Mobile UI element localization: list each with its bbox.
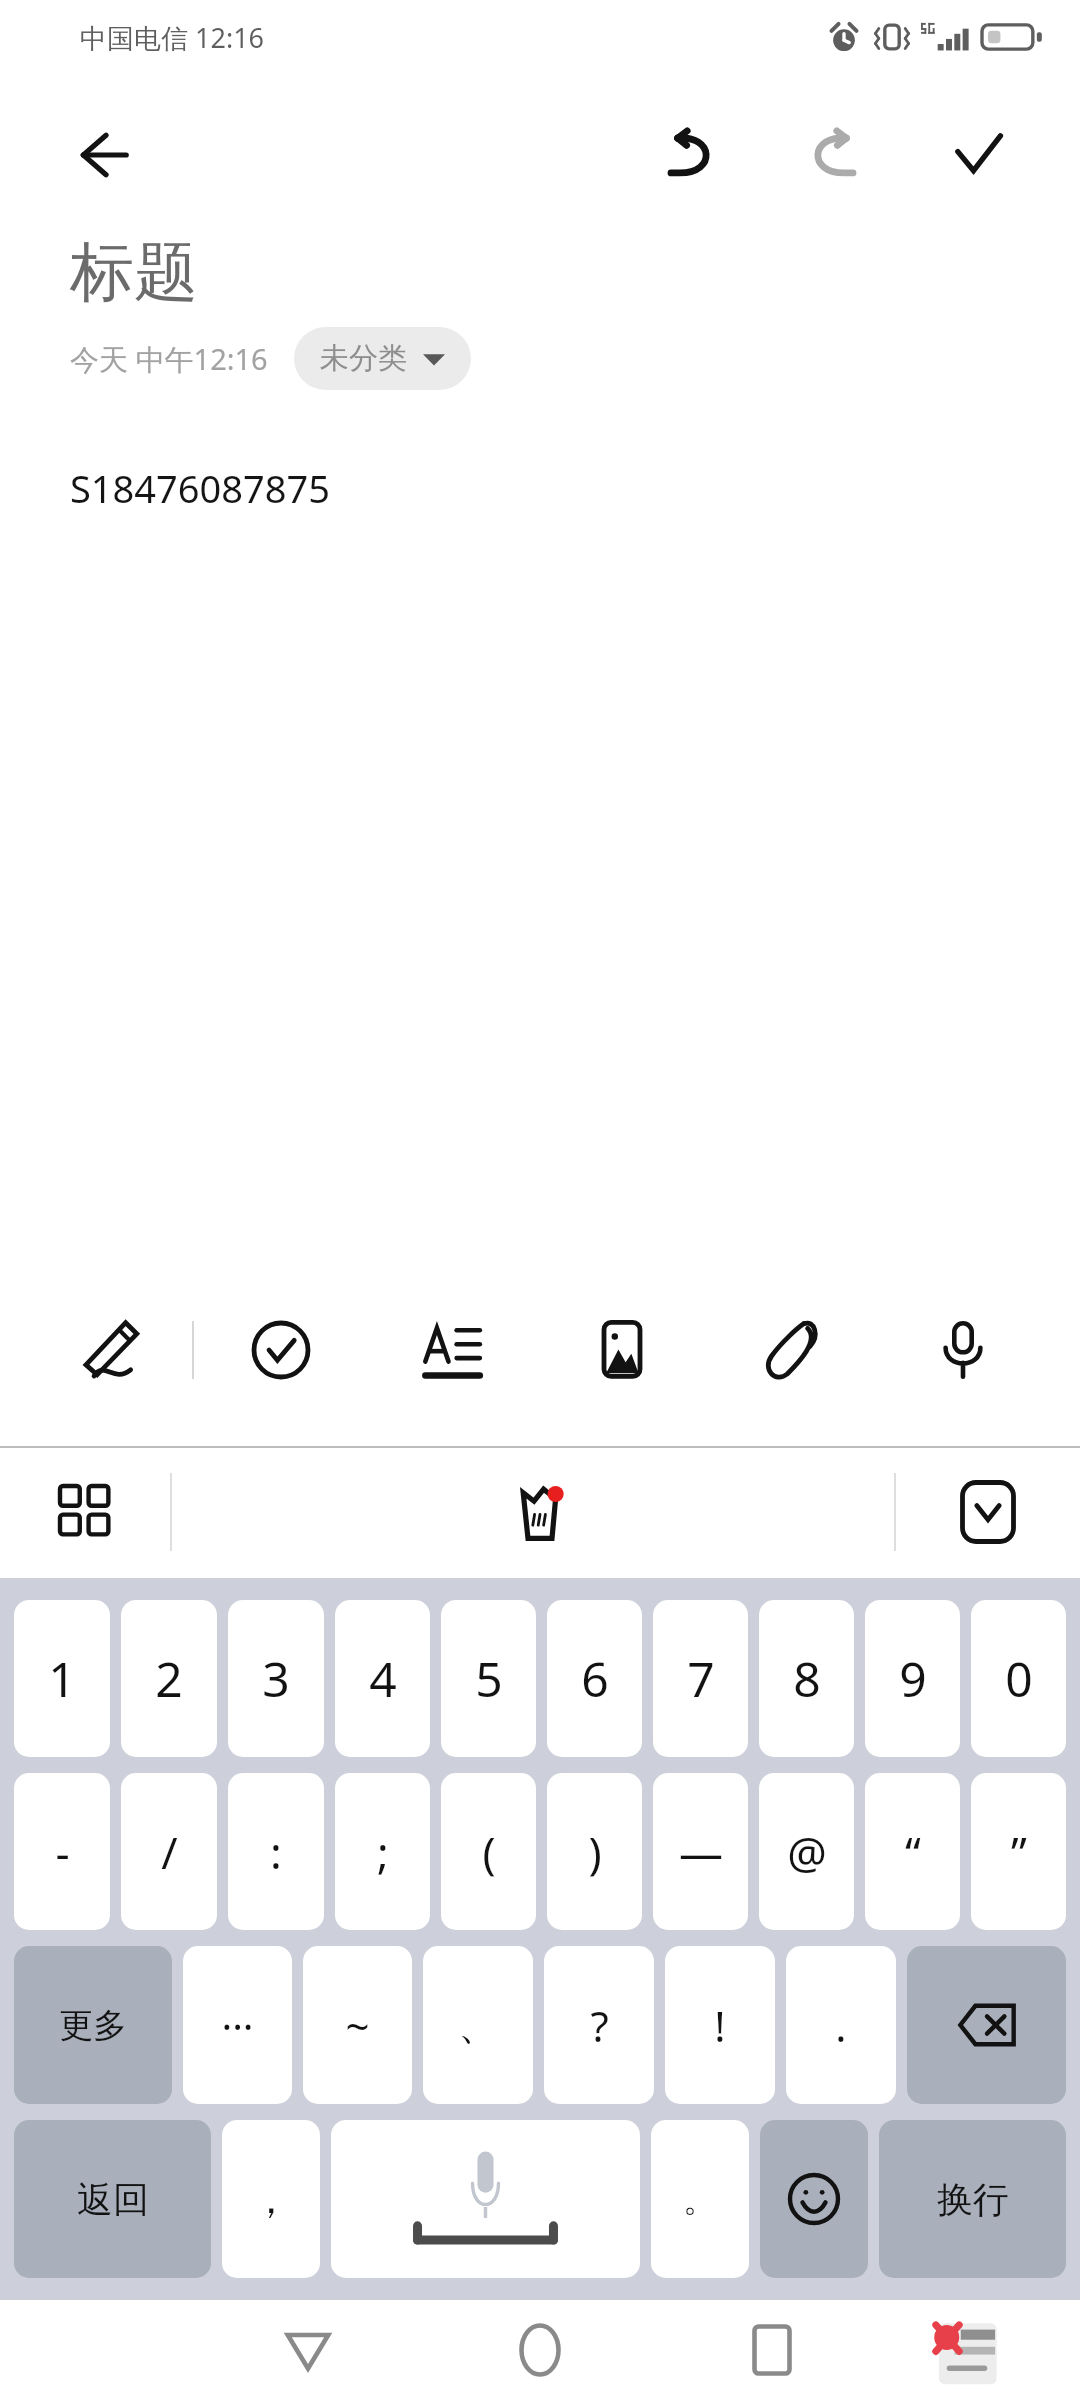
button[interactable]: - (14, 1773, 110, 1930)
staticText: - (55, 1822, 70, 1882)
staticText: 、 (458, 2000, 498, 2050)
staticText: 8 (793, 1646, 821, 1711)
staticText: 4 (369, 1646, 397, 1711)
staticText: ; (377, 1822, 389, 1882)
button[interactable]: . (786, 1946, 896, 2104)
staticText: 6 (581, 1646, 609, 1711)
staticText: 2 (155, 1646, 183, 1711)
button[interactable]: Recent apps (724, 2302, 820, 2398)
button[interactable]: 5 (441, 1600, 536, 1757)
staticText: ( (482, 1822, 496, 1882)
staticText: ) (588, 1822, 602, 1882)
staticText: 返回 (77, 2177, 149, 2222)
button[interactable]: 8 (759, 1600, 854, 1757)
staticText: 3 (262, 1646, 290, 1711)
button[interactable]: ; (335, 1773, 430, 1930)
button[interactable]: Home (492, 2302, 588, 2398)
staticText: @ (787, 1822, 827, 1882)
button[interactable]: 4 (335, 1600, 430, 1757)
button[interactable]: — (653, 1773, 748, 1930)
staticText: 今天 中午12:16 (70, 339, 268, 379)
button[interactable]: 7 (653, 1600, 748, 1757)
button[interactable]: Baidu IME (490, 1462, 590, 1562)
staticText: 7 (687, 1646, 715, 1711)
button[interactable]: Space (331, 2120, 640, 2278)
button[interactable]: 3 (228, 1600, 324, 1757)
button[interactable]: “ (865, 1773, 960, 1930)
button[interactable]: Insert image (574, 1302, 670, 1398)
button[interactable]: 、 (423, 1946, 533, 2104)
button[interactable]: ” (971, 1773, 1066, 1930)
staticText: S18476087875 (70, 462, 330, 514)
staticText: ··· (221, 1998, 254, 2052)
button[interactable]: Back (260, 2302, 356, 2398)
button[interactable]: 换行 (879, 2120, 1066, 2278)
staticText: . (835, 1997, 847, 2054)
staticText: ， (251, 2174, 291, 2224)
staticText: 9 (899, 1646, 927, 1711)
button[interactable]: 0 (971, 1600, 1066, 1757)
staticText: ” (1011, 1822, 1027, 1882)
button[interactable]: Checklist (233, 1302, 329, 1398)
staticText: 换行 (937, 2177, 1009, 2222)
button[interactable]: Redo (788, 112, 880, 198)
staticText: ? (590, 1997, 609, 2054)
button[interactable]: 6 (547, 1600, 642, 1757)
button[interactable]: ) (547, 1773, 642, 1930)
button[interactable]: 更多 (14, 1946, 172, 2104)
staticText: 0 (1005, 1646, 1033, 1711)
button[interactable]: 返回 (14, 2120, 211, 2278)
button[interactable]: ( (441, 1773, 536, 1930)
button[interactable]: / (121, 1773, 217, 1930)
button[interactable]: ， (222, 2120, 320, 2278)
button[interactable]: Hide keyboard (940, 1464, 1036, 1560)
staticText: 更多 (59, 2004, 127, 2047)
staticText: 5 (475, 1646, 503, 1711)
button[interactable]: 1 (14, 1600, 110, 1757)
button[interactable]: Emoji (760, 2120, 868, 2278)
button[interactable]: Backspace (907, 1946, 1066, 2104)
button[interactable]: ~ (303, 1946, 412, 2104)
staticText: “ (905, 1822, 921, 1882)
button[interactable]: @ (759, 1773, 854, 1930)
button[interactable]: 9 (865, 1600, 960, 1757)
button[interactable]: ? (544, 1946, 654, 2104)
button[interactable]: Undo (644, 112, 736, 198)
button[interactable]: Keyboard panel (38, 1464, 134, 1560)
staticText: 中国电信 12:16 (80, 19, 265, 56)
button[interactable]: Text style (404, 1302, 500, 1398)
button[interactable]: 未分类 (294, 327, 471, 390)
staticText: 1 (48, 1646, 76, 1711)
button[interactable]: Save (932, 112, 1024, 198)
staticText: 。 (683, 2178, 717, 2221)
button[interactable]: : (228, 1773, 324, 1930)
staticText: ! (714, 1997, 726, 2054)
button[interactable]: ! (665, 1946, 775, 2104)
button[interactable]: 。 (651, 2120, 749, 2278)
button[interactable]: Back (66, 113, 150, 197)
button[interactable]: Voice input (915, 1302, 1011, 1398)
staticText: / (161, 1822, 178, 1882)
button[interactable]: Handwriting (64, 1302, 160, 1398)
button[interactable]: Attach file (744, 1302, 840, 1398)
staticText: : (270, 1822, 282, 1882)
staticText: — (679, 1822, 723, 1882)
button[interactable]: ··· (183, 1946, 292, 2104)
button[interactable]: 2 (121, 1600, 217, 1757)
staticText: 未分类 (320, 340, 407, 377)
staticText: 标题 (70, 232, 198, 313)
staticText: ~ (345, 1997, 370, 2054)
